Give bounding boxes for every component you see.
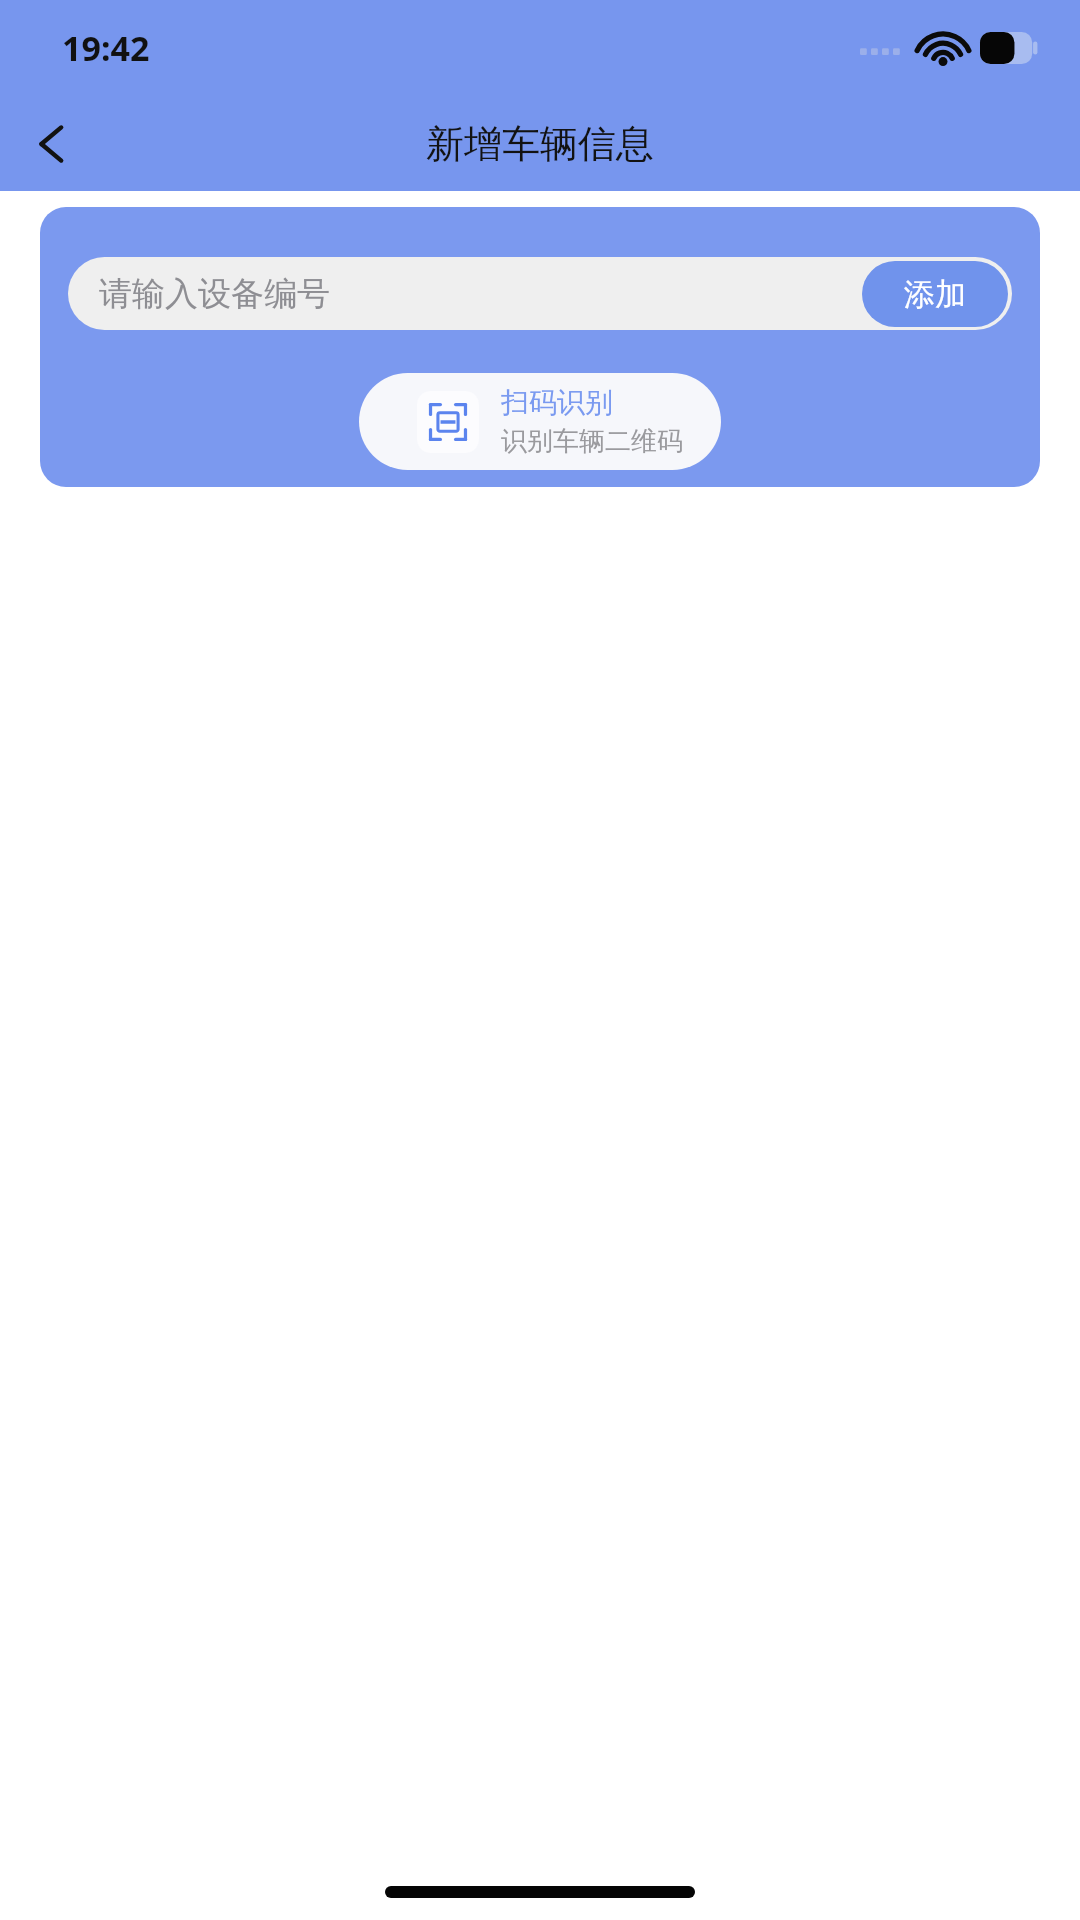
button[interactable]: Back <box>16 108 88 180</box>
staticText: 新增车辆信息 <box>426 120 654 168</box>
button[interactable]: 扫码识别 <box>359 373 721 470</box>
staticText: 19:42 <box>62 25 150 71</box>
button[interactable]: 添加 <box>862 261 1008 327</box>
staticText: 识别车辆二维码 <box>501 425 683 458</box>
button[interactable]: 请输入设备编号 <box>99 273 330 315</box>
staticText: 添加 <box>904 275 966 314</box>
staticText: 扫码识别 <box>501 385 613 420</box>
